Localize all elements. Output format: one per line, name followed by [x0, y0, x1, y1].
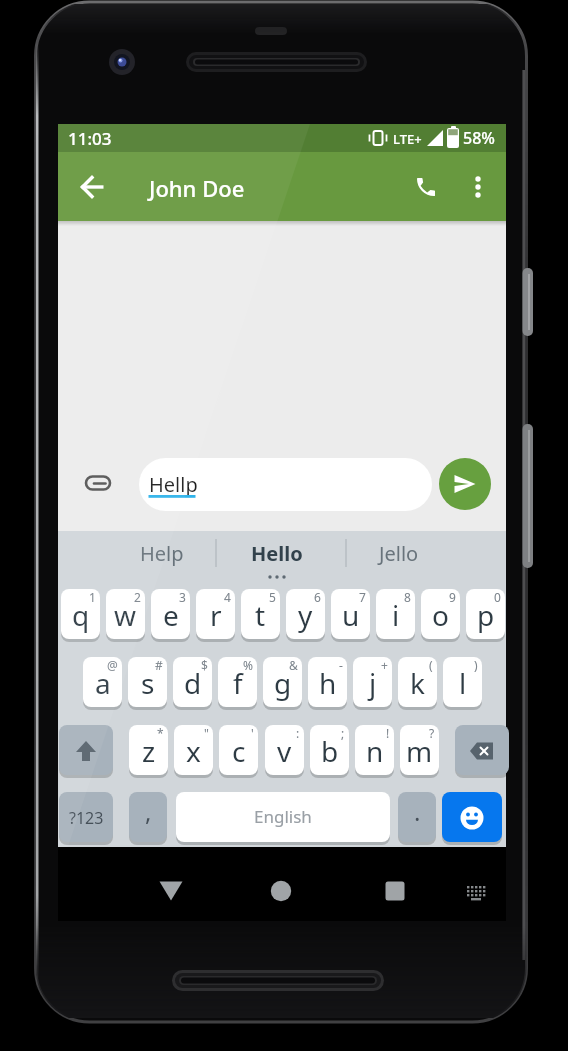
staticText: @ [107, 657, 118, 673]
staticText: - [339, 657, 343, 673]
staticText: g [274, 664, 292, 702]
staticText: d [184, 664, 202, 702]
staticText: # [155, 657, 163, 673]
staticText: k [410, 664, 425, 702]
staticText: + [381, 657, 388, 673]
button[interactable]: h [308, 657, 347, 708]
button[interactable]: . [398, 792, 436, 843]
staticText: ?123 [69, 807, 104, 829]
staticText: Hello [251, 540, 303, 567]
staticText: q [72, 596, 90, 634]
staticText: English [254, 805, 312, 828]
staticText: r [210, 596, 222, 634]
staticText: v [277, 732, 292, 770]
button[interactable]: l [443, 657, 482, 708]
staticText: l [459, 664, 467, 702]
staticText: 6 [314, 589, 321, 605]
button[interactable]: f [218, 657, 257, 708]
button[interactable] [442, 792, 502, 843]
button[interactable]: ?123 [59, 792, 113, 843]
button[interactable]: z [129, 725, 168, 776]
staticText: p [477, 596, 495, 634]
button[interactable] [452, 869, 500, 917]
staticText: 8 [404, 589, 411, 605]
staticText: 0 [494, 589, 501, 605]
button[interactable]: q [61, 589, 100, 640]
button[interactable]: c [219, 725, 258, 776]
staticText: LTE+ [393, 130, 422, 148]
staticText: Hellp [149, 471, 198, 498]
button[interactable] [257, 867, 305, 915]
staticText: ( [429, 657, 433, 673]
button[interactable] [402, 163, 450, 211]
staticText: ' [251, 725, 254, 741]
button[interactable]: p [466, 589, 505, 640]
button[interactable]: v [265, 725, 304, 776]
staticText: 9 [449, 589, 456, 605]
staticText: ? [429, 725, 435, 741]
button[interactable] [454, 163, 502, 211]
staticText: 3 [179, 589, 186, 605]
button[interactable] [59, 725, 113, 776]
button[interactable]: m [400, 725, 439, 776]
staticText: * [157, 725, 164, 741]
staticText: 4 [224, 589, 231, 605]
staticText: % [243, 657, 253, 673]
button[interactable]: y [286, 589, 325, 640]
button[interactable]: a [83, 657, 122, 708]
button[interactable] [69, 163, 117, 211]
staticText: i [392, 596, 400, 634]
staticText: Help [140, 540, 184, 567]
staticText: , [145, 795, 152, 828]
staticText: x [186, 732, 201, 770]
staticText: a [95, 664, 111, 702]
staticText: . [414, 795, 421, 828]
button[interactable]: o [421, 589, 460, 640]
button[interactable]: Jello [349, 535, 449, 571]
button[interactable] [439, 458, 491, 510]
staticText: e [163, 596, 179, 634]
staticText: y [298, 596, 313, 634]
staticText: b [321, 732, 339, 770]
staticText: $ [201, 657, 208, 673]
button[interactable]: g [263, 657, 302, 708]
button[interactable]: Hellp [139, 458, 432, 511]
button[interactable]: e [151, 589, 190, 640]
button[interactable]: x [174, 725, 213, 776]
staticText: ; [341, 725, 345, 741]
button[interactable]: j [353, 657, 392, 708]
staticText: : [296, 725, 300, 741]
button[interactable] [455, 725, 509, 776]
staticText: t [255, 596, 266, 634]
staticText: ! [386, 725, 390, 741]
staticText: 58% [463, 127, 495, 149]
button[interactable] [147, 867, 195, 915]
staticText: 2 [134, 589, 141, 605]
button[interactable]: r [196, 589, 235, 640]
button[interactable]: w [106, 589, 145, 640]
staticText: h [319, 664, 337, 702]
staticText: 11:03 [68, 127, 112, 150]
button[interactable]: t [241, 589, 280, 640]
button[interactable]: n [355, 725, 394, 776]
button[interactable]: d [173, 657, 212, 708]
staticText: u [342, 596, 360, 634]
staticText: s [141, 664, 155, 702]
button[interactable]: k [398, 657, 437, 708]
staticText: & [289, 657, 298, 673]
staticText: f [233, 664, 243, 702]
button[interactable]: s [128, 657, 167, 708]
button[interactable]: English [176, 792, 390, 843]
button[interactable]: , [129, 792, 167, 843]
button[interactable]: u [331, 589, 370, 640]
staticText: n [366, 732, 384, 770]
button[interactable]: i [376, 589, 415, 640]
button[interactable]: Help [112, 535, 212, 571]
button[interactable]: b [310, 725, 349, 776]
staticText: Jello [379, 540, 419, 567]
button[interactable]: Hello [227, 535, 327, 571]
button[interactable] [74, 461, 122, 509]
button[interactable] [371, 867, 419, 915]
staticText: 7 [359, 589, 366, 605]
staticText: 5 [269, 589, 276, 605]
